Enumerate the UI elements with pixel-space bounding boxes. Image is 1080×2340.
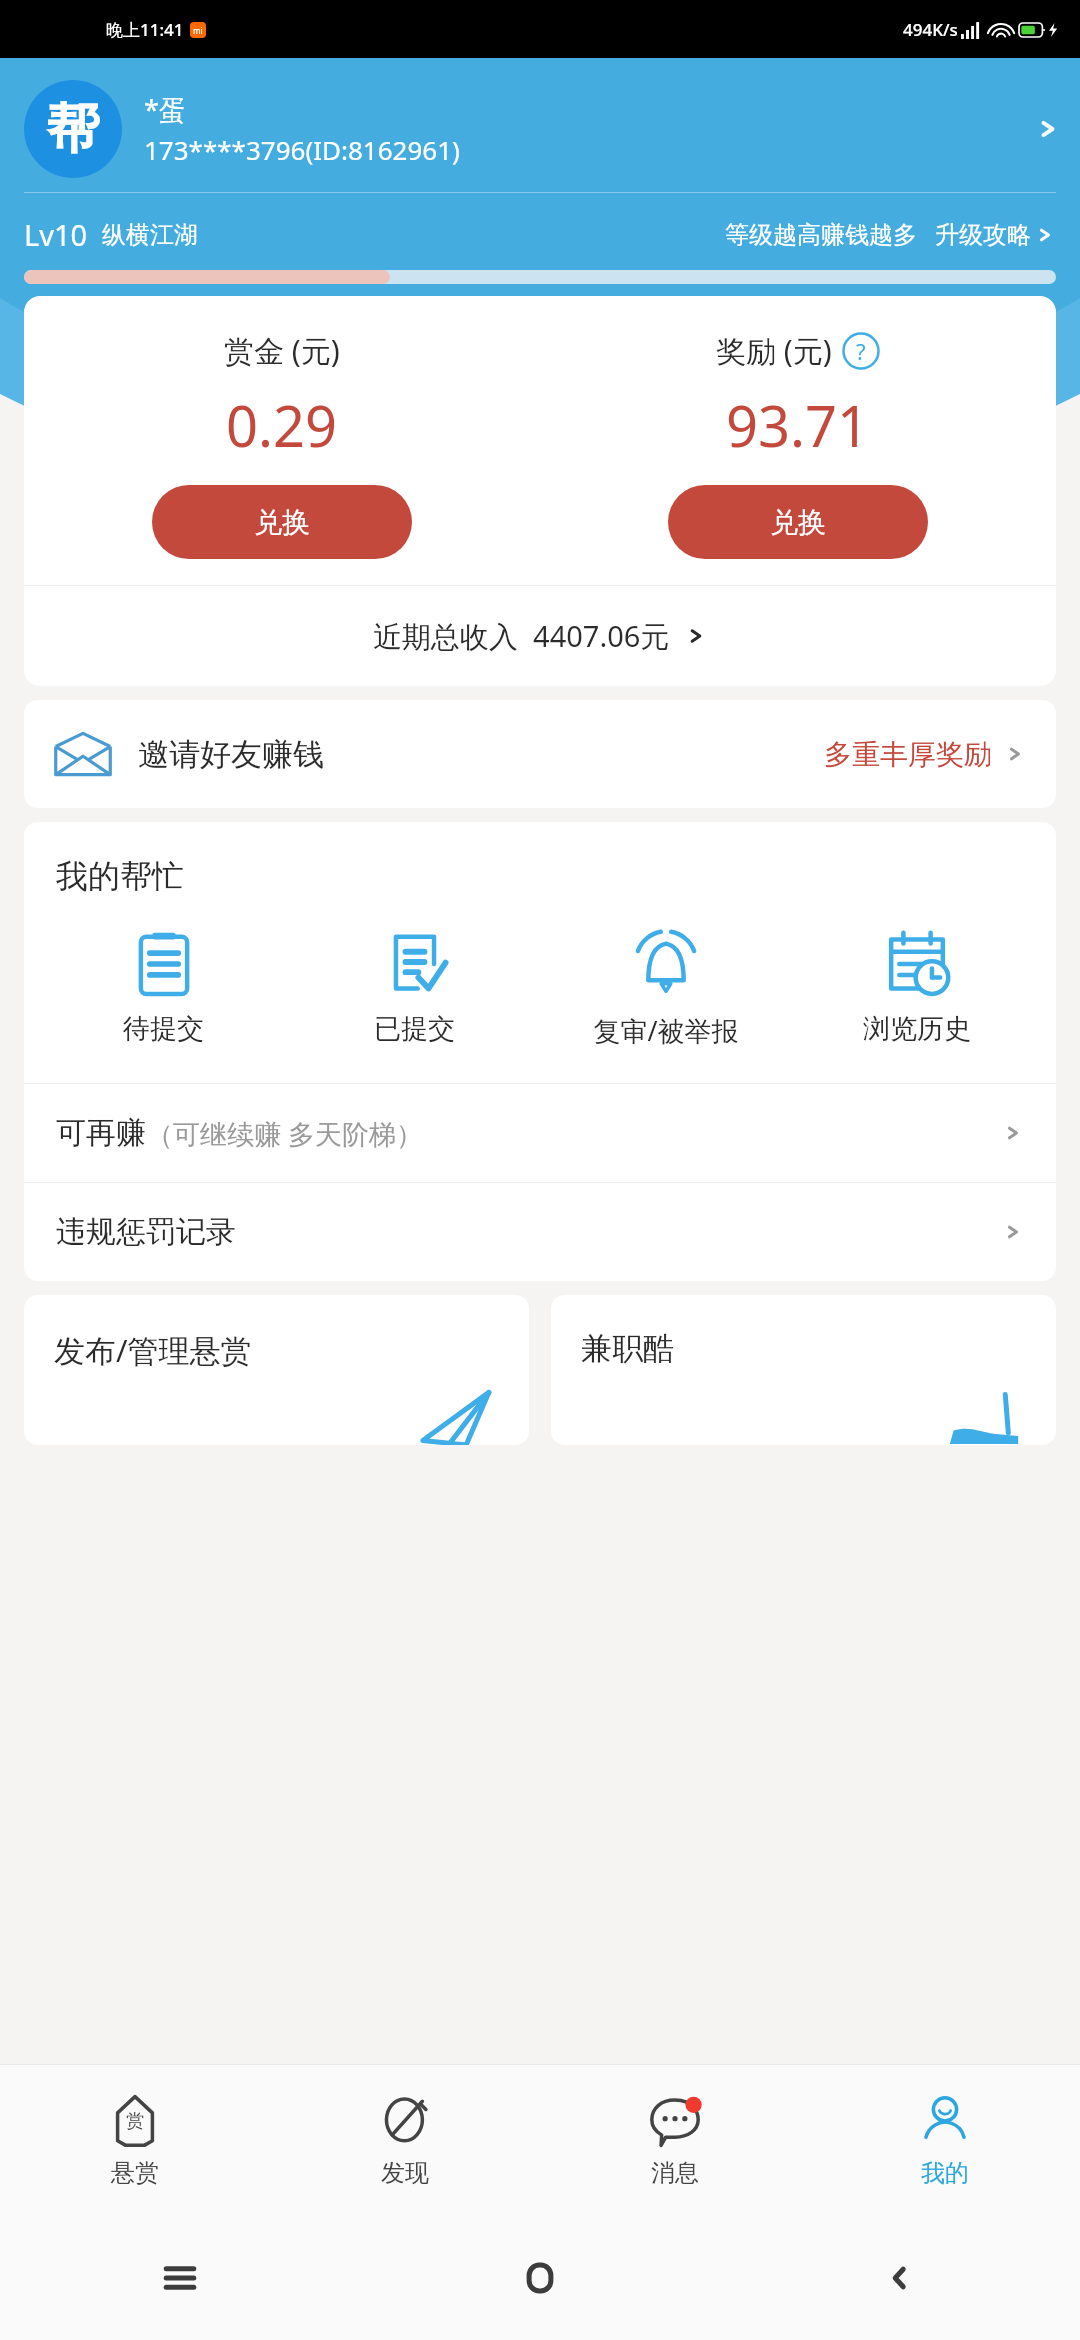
button[interactable]: 浏览历史 — [791, 926, 1042, 1050]
staticText: 赏金 (元) — [224, 330, 340, 371]
staticText: 已提交 — [374, 1012, 455, 1046]
staticText: 赏 — [126, 2110, 144, 2133]
staticText: 违规惩罚记录 — [56, 1213, 236, 1251]
button[interactable]: 复审/被举报 — [540, 926, 791, 1053]
button[interactable]: Lv10 — [24, 215, 1056, 254]
button[interactable]: 发现 — [270, 2065, 540, 2215]
staticText: 兑换 — [254, 505, 310, 540]
staticText: 494K/s — [903, 18, 958, 41]
button[interactable]: 已提交 — [289, 926, 540, 1050]
staticText: 晚上11:41 — [106, 18, 184, 41]
staticText: 我的帮忙 — [56, 856, 184, 896]
staticText: 多重丰厚奖励 — [824, 737, 992, 772]
staticText: 邀请好友赚钱 — [138, 735, 324, 774]
staticText: Lv10 — [24, 215, 88, 254]
staticText: 等级越高赚钱越多 — [725, 220, 917, 250]
staticText: 纵横江湖 — [102, 220, 198, 250]
other: Recents — [157, 2255, 203, 2301]
button[interactable]: 待提交 — [38, 926, 289, 1050]
button[interactable]: 兼职酷 — [551, 1295, 1056, 1445]
staticText: 0.29 — [226, 387, 338, 463]
staticText: 173****3796(ID:8162961) — [144, 132, 460, 167]
staticText: ? — [856, 336, 866, 366]
button[interactable]: 兑换 — [668, 485, 928, 559]
button[interactable]: 消息 — [540, 2065, 810, 2215]
button[interactable]: 可再赚 — [24, 1084, 1056, 1182]
staticText: 兑换 — [770, 505, 826, 540]
staticText: 近期总收入 4407.06元 — [373, 616, 670, 656]
button[interactable]: 赏 — [0, 2065, 270, 2215]
staticText: （可继续赚 多天阶梯） — [146, 1115, 424, 1152]
staticText: 奖励 (元) — [716, 330, 832, 371]
button[interactable]: 邀请好友赚钱 — [24, 700, 1056, 808]
button[interactable]: 近期总收入 4407.06元 — [24, 586, 1056, 686]
other: Home — [523, 2255, 557, 2301]
other: Back — [880, 2258, 920, 2298]
staticText: 兼职酷 — [581, 1329, 674, 1368]
button[interactable]: Help — [842, 332, 880, 370]
button[interactable]: 发布/管理悬赏 — [24, 1295, 529, 1445]
staticText: 悬赏 — [111, 2158, 159, 2188]
button[interactable]: 兑换 — [152, 485, 412, 559]
staticText: 复审/被举报 — [593, 1012, 739, 1049]
staticText: 消息 — [651, 2158, 699, 2188]
staticText: 升级攻略 — [935, 220, 1031, 250]
button[interactable]: 帮 — [0, 58, 1080, 192]
button[interactable]: 违规惩罚记录 — [24, 1183, 1056, 1281]
button[interactable]: 我的 — [810, 2065, 1080, 2215]
staticText: *蛋 — [144, 91, 186, 128]
staticText: mi — [193, 25, 203, 36]
other: Profile details — [1034, 115, 1062, 143]
staticText: 93.71 — [726, 387, 870, 463]
staticText: 可再赚 — [56, 1114, 146, 1152]
staticText: 待提交 — [123, 1012, 204, 1046]
staticText: 帮 — [46, 95, 100, 163]
staticText: 我的 — [921, 2158, 969, 2188]
staticText: 浏览历史 — [863, 1012, 971, 1046]
staticText: 发现 — [381, 2158, 429, 2188]
staticText: 发布/管理悬赏 — [54, 1329, 252, 1371]
